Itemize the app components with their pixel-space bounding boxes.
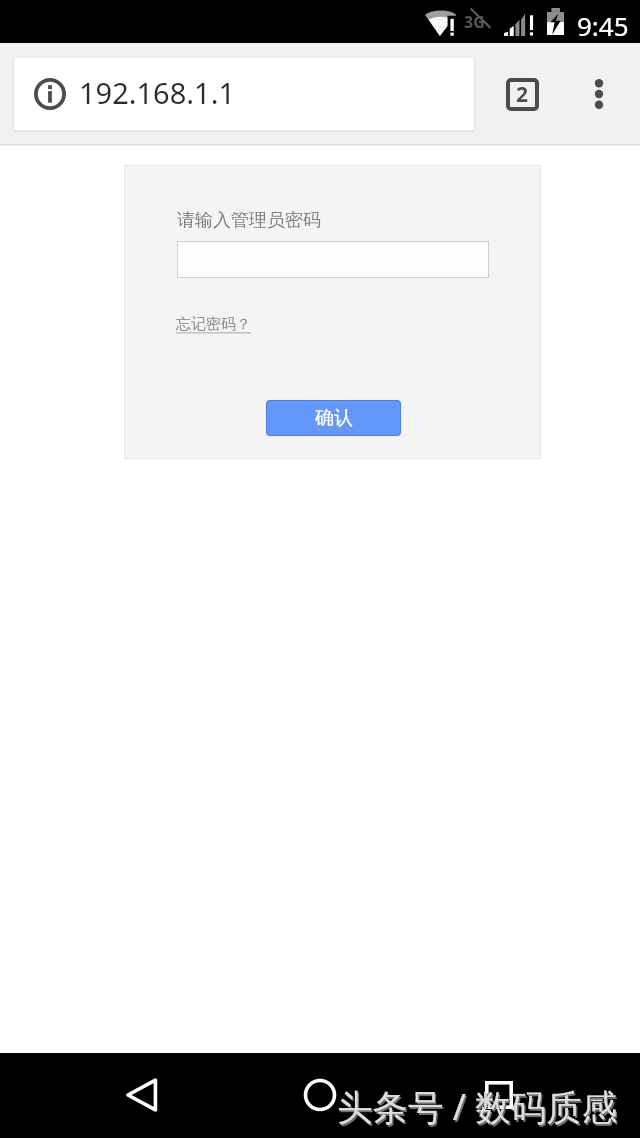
staticText: 192.168.1.1 — [79, 73, 236, 112]
button[interactable]: Recent apps — [469, 1065, 529, 1125]
staticText: 头条号 / 数码质感 — [337, 1082, 618, 1130]
button[interactable]: More options — [571, 66, 627, 122]
button[interactable]: 192.168.1.1 — [14, 58, 474, 130]
button[interactable] — [177, 241, 489, 278]
staticText: 请输入管理员密码 — [177, 209, 321, 232]
staticText: 确认 — [315, 406, 353, 430]
staticText: 9:45 — [577, 8, 629, 43]
button[interactable]: 确认 — [266, 400, 401, 436]
button[interactable]: Home — [290, 1065, 350, 1125]
staticText: 2 — [516, 80, 529, 109]
button[interactable]: 忘记密码？ — [176, 315, 251, 334]
staticText: 3G — [464, 11, 485, 33]
button[interactable]: Tabs, 2 open — [494, 66, 550, 122]
button[interactable]: Back — [112, 1065, 172, 1125]
